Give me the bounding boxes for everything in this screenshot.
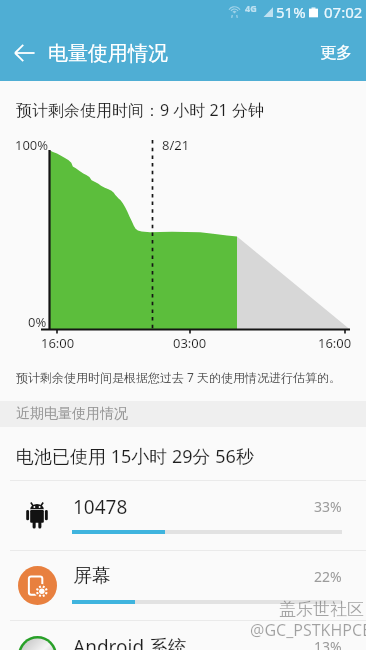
staticText: 4G [245,2,257,14]
staticText: 预计剩余使用时间是根据您过去 7 天的使用情况进行估算的。 [16,369,342,385]
staticText: 03:00 [173,334,207,352]
staticText: 51% [276,2,306,22]
staticText: 10478 [73,494,128,520]
staticText: 预计剩余使用时间：9 小时 21 分钟 [16,99,264,121]
staticText: 13% [314,637,342,650]
staticText: 近期电量使用情况 [16,405,128,423]
staticText: 22% [314,567,342,586]
staticText: 100% [15,136,49,154]
button[interactable]: 屏幕 [0,551,366,620]
staticText: Android 系统 [73,634,188,650]
staticText: 电池已使用 15小时 29分 56秒 [16,444,254,469]
staticText: 33% [314,497,342,516]
staticText: 8/21 [162,136,190,154]
staticText: 16:00 [41,334,75,352]
staticText: 屏幕 [73,564,111,588]
button[interactable]: 更多 [306,27,366,79]
staticText: 电量使用情况 [48,41,168,66]
staticText: 更多 [320,43,352,63]
button[interactable]: Back [0,25,48,81]
button[interactable]: 10478 [0,481,366,550]
staticText: 0% [28,313,47,331]
staticText: 07:02 [324,2,363,22]
staticText: @GC_PSTKHPCE [250,619,366,641]
staticText: 16:00 [318,334,352,352]
button[interactable]: Android 系统 [0,621,366,650]
staticText: 盖乐世社区 [279,599,364,620]
